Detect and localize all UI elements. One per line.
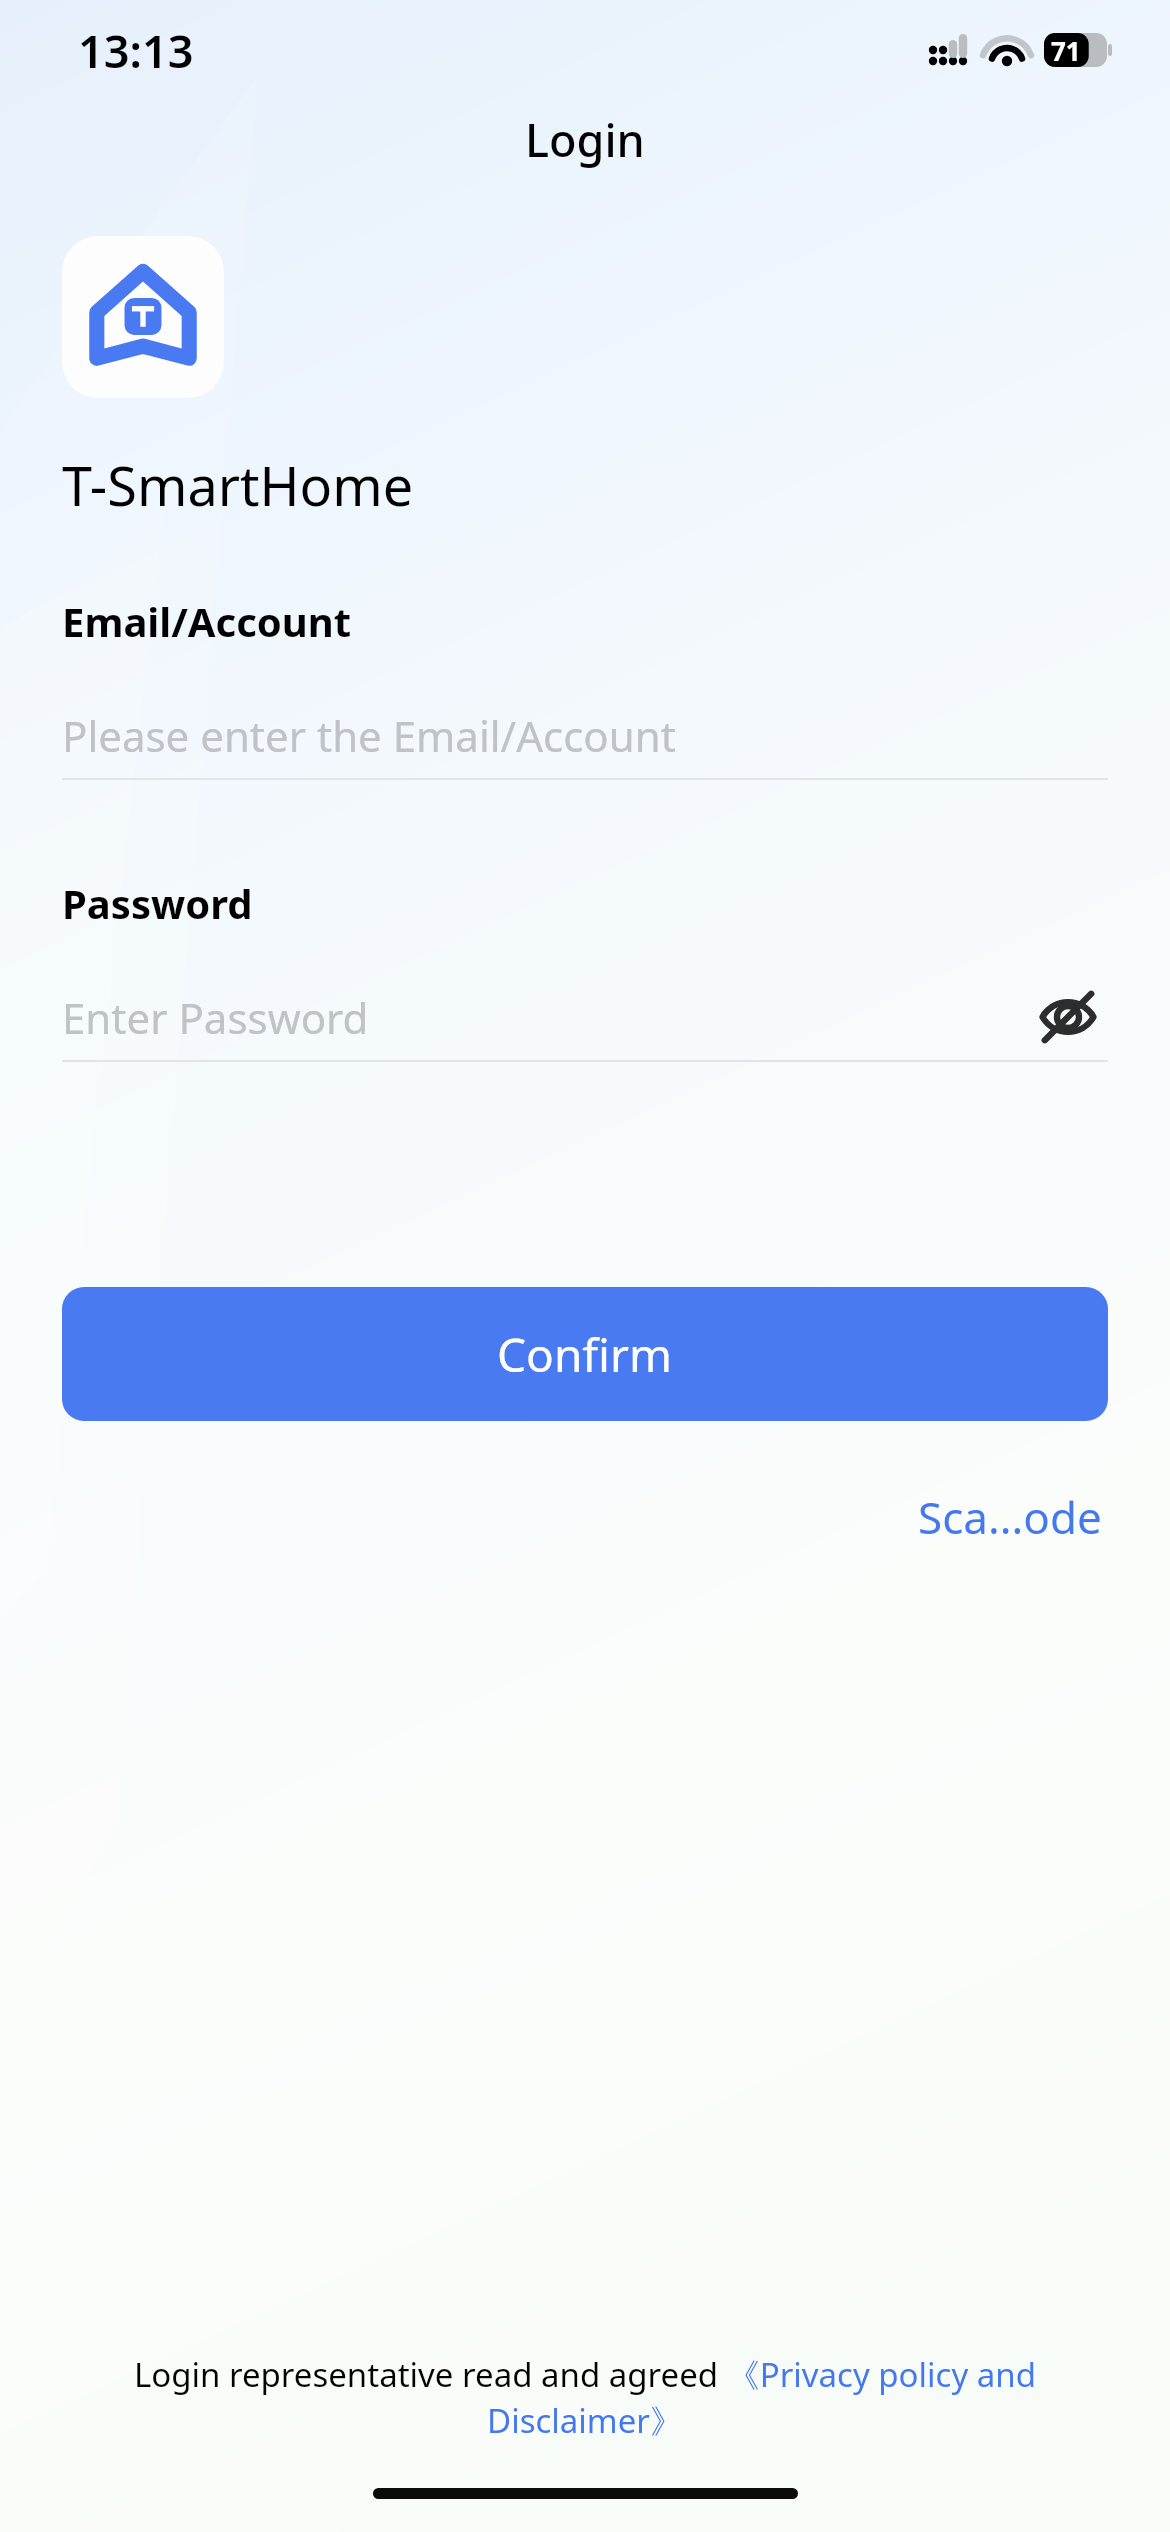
button[interactable]: Confirm [62,1287,1108,1421]
staticText: Enter Password [62,989,369,1046]
button[interactable]: Show password [1028,978,1108,1056]
staticText: Please enter the Email/Account [62,707,676,764]
staticText: T-SmartHome [62,448,414,522]
staticText: 71 [1051,33,1081,67]
staticText: Email/Account [62,594,352,648]
staticText: Password [62,876,253,930]
staticText: Confirm [497,1323,673,1386]
staticText: Login [525,109,645,170]
staticText: 13:13 [78,20,194,81]
staticText: Sca...ode [918,1487,1102,1547]
button[interactable]: Sca...ode [912,1481,1108,1553]
button[interactable]: Please enter the Email/Account [62,696,1108,774]
button[interactable]: Enter Password [62,978,1108,1056]
button[interactable]: Login representative read and agreed 《Pr… [34,2352,1136,2442]
